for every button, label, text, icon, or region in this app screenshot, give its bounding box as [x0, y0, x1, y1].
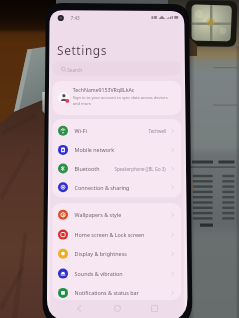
button[interactable]: Back [70, 302, 92, 316]
button[interactable]: Home [108, 302, 130, 316]
button[interactable] [52, 159, 182, 178]
button[interactable] [52, 121, 182, 140]
button[interactable] [52, 81, 182, 115]
button[interactable] [52, 140, 182, 159]
button[interactable] [52, 283, 182, 302]
button[interactable] [52, 178, 182, 197]
button[interactable] [52, 264, 182, 283]
button[interactable] [52, 225, 182, 244]
button[interactable]: Recent apps [144, 302, 166, 316]
button[interactable]: Search [52, 61, 182, 76]
button[interactable] [52, 205, 182, 224]
button[interactable] [52, 244, 182, 263]
